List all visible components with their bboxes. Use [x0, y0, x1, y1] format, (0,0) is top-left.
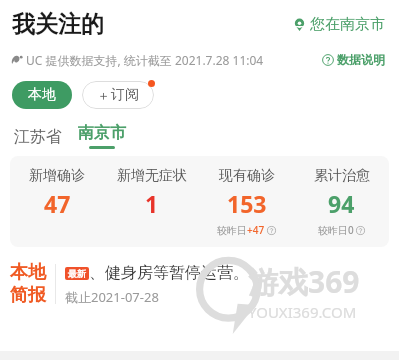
staticText: 我关注的: [12, 10, 104, 39]
staticText: 累计治愈: [314, 167, 370, 185]
staticText: YOUXI369.COM: [248, 302, 357, 322]
button[interactable]: 本地: [12, 81, 72, 109]
staticText: 新增无症状: [117, 167, 187, 185]
staticText: 本地: [10, 261, 46, 284]
staticText: 本地: [28, 86, 56, 104]
button[interactable]: 新增确诊: [10, 156, 389, 247]
staticText: 简报: [10, 284, 46, 307]
staticText: 、健身房等暂停运营。: [89, 263, 249, 283]
staticText: 47: [44, 188, 71, 219]
button[interactable]: ＋: [82, 81, 154, 109]
staticText: 1: [145, 188, 159, 219]
staticText: 153: [227, 188, 267, 219]
staticText: 0: [348, 223, 354, 237]
button[interactable]: 江苏省: [12, 125, 64, 149]
staticText: 较昨日: [318, 224, 348, 237]
staticText: 数据说明: [337, 52, 385, 67]
button[interactable]: 您在南京市: [291, 13, 387, 36]
button[interactable]: 南京市: [76, 123, 128, 149]
staticText: 94: [328, 188, 355, 219]
staticText: 江苏省: [14, 127, 62, 147]
button[interactable]: 本地: [10, 261, 389, 307]
staticText: 最新: [68, 268, 86, 279]
staticText: ＋: [97, 87, 110, 103]
staticText: 游戏369: [248, 261, 360, 302]
staticText: UC 提供数据支持, 统计截至 2021.7.28 11:04: [26, 52, 264, 68]
staticText: 南京市: [78, 123, 126, 143]
staticText: 订阅: [111, 86, 139, 104]
staticText: 新增确诊: [29, 167, 85, 185]
staticText: 您在南京市: [310, 15, 385, 34]
staticText: 现有确诊: [219, 167, 275, 185]
staticText: 截止2021-07-28: [65, 288, 159, 306]
button[interactable]: 数据说明: [320, 50, 387, 69]
staticText: 较昨日: [217, 224, 247, 237]
staticText: +47: [247, 223, 265, 237]
